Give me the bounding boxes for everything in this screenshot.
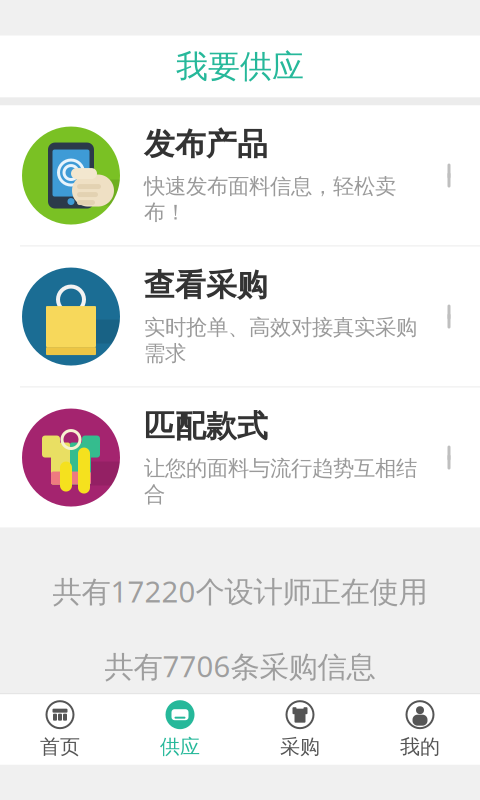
staticText: 让您的面料与流行趋势互相结合 [144,455,417,508]
staticText: 实时抢单、高效对接真实采购需求 [144,314,417,367]
staticText: 共有7706条采购信息 [104,646,375,685]
staticText: 发布产品 [144,125,268,163]
button[interactable]: 发布产品 [0,105,480,245]
staticText: 首页 [40,735,80,759]
staticText: 查看采购 [144,266,268,304]
button[interactable]: 采购 [240,694,360,764]
staticText: 供应 [160,735,200,759]
button[interactable]: 供应 [120,694,240,764]
button[interactable]: 首页 [0,694,120,764]
staticText: 匹配款式 [144,407,268,445]
staticText: 我的 [400,735,440,759]
staticText: 采购 [280,735,320,759]
staticText: 共有17220个设计师正在使用 [52,571,427,610]
button[interactable]: 匹配款式 [0,387,480,527]
button[interactable]: 查看采购 [0,246,480,386]
staticText: 快速发布面料信息，轻松卖布！ [144,173,396,226]
button[interactable]: 我的 [360,694,480,764]
staticText: 我要供应 [176,47,304,86]
